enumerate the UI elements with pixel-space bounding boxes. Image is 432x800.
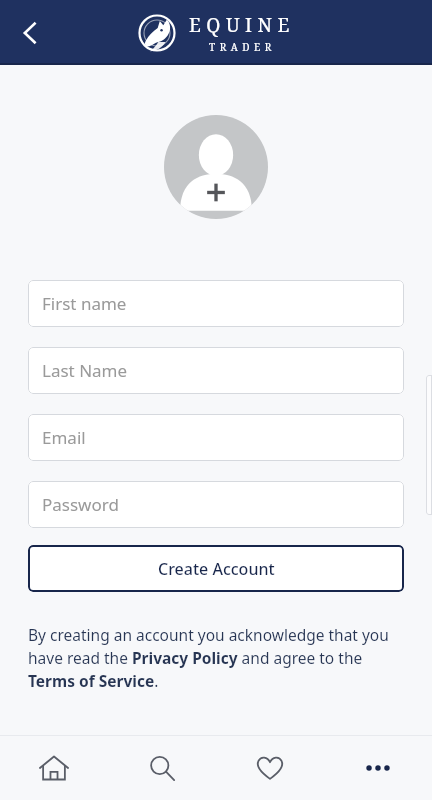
staticText: Create Account — [158, 558, 275, 580]
button[interactable]: Last Name — [28, 347, 404, 394]
staticText: EQUINE — [189, 12, 295, 38]
staticText: Email — [42, 426, 86, 449]
staticText: TRADER — [209, 40, 276, 54]
button[interactable]: Add profile photo — [164, 115, 268, 219]
button[interactable]: By creating an account you acknowledge t… — [28, 624, 404, 692]
button[interactable]: First name — [28, 280, 404, 327]
button[interactable]: Search — [108, 736, 216, 800]
button[interactable]: Create Account — [28, 545, 404, 592]
button[interactable]: Back — [8, 11, 52, 55]
button[interactable]: Email — [28, 414, 404, 461]
button[interactable]: More — [324, 736, 432, 800]
button[interactable]: Favorites — [216, 736, 324, 800]
staticText: By creating an account you acknowledge t… — [28, 624, 404, 692]
button[interactable]: Home — [0, 736, 108, 800]
staticText: Password — [42, 493, 119, 516]
staticText: Last Name — [42, 359, 128, 382]
staticText: First name — [42, 292, 127, 315]
button[interactable]: Password — [28, 481, 404, 528]
